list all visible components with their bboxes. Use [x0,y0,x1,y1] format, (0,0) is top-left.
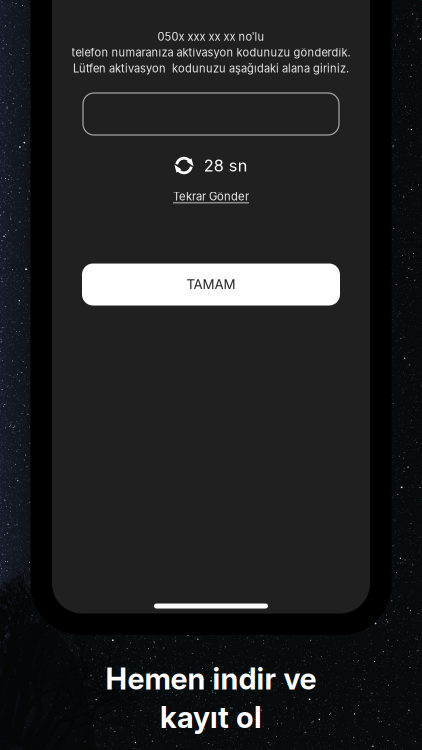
button[interactable]: TAMAM [82,263,340,305]
staticText: Hemen indir ve [105,661,316,696]
button[interactable]: Tekrar Gönder [167,185,255,208]
staticText: Tekrar Gönder [173,190,249,203]
staticText: TAMAM [186,276,235,292]
staticText: 28 sn [204,156,248,175]
staticText: kayıt ol [160,699,262,735]
staticText: telefon numaranıza aktivasyon kodunuzu g… [71,46,350,59]
staticText: 050x xxx xx xx no'lu [157,30,264,43]
staticText: Lütfen aktivasyon kodunuzu aşağıdaki ala… [73,62,349,75]
